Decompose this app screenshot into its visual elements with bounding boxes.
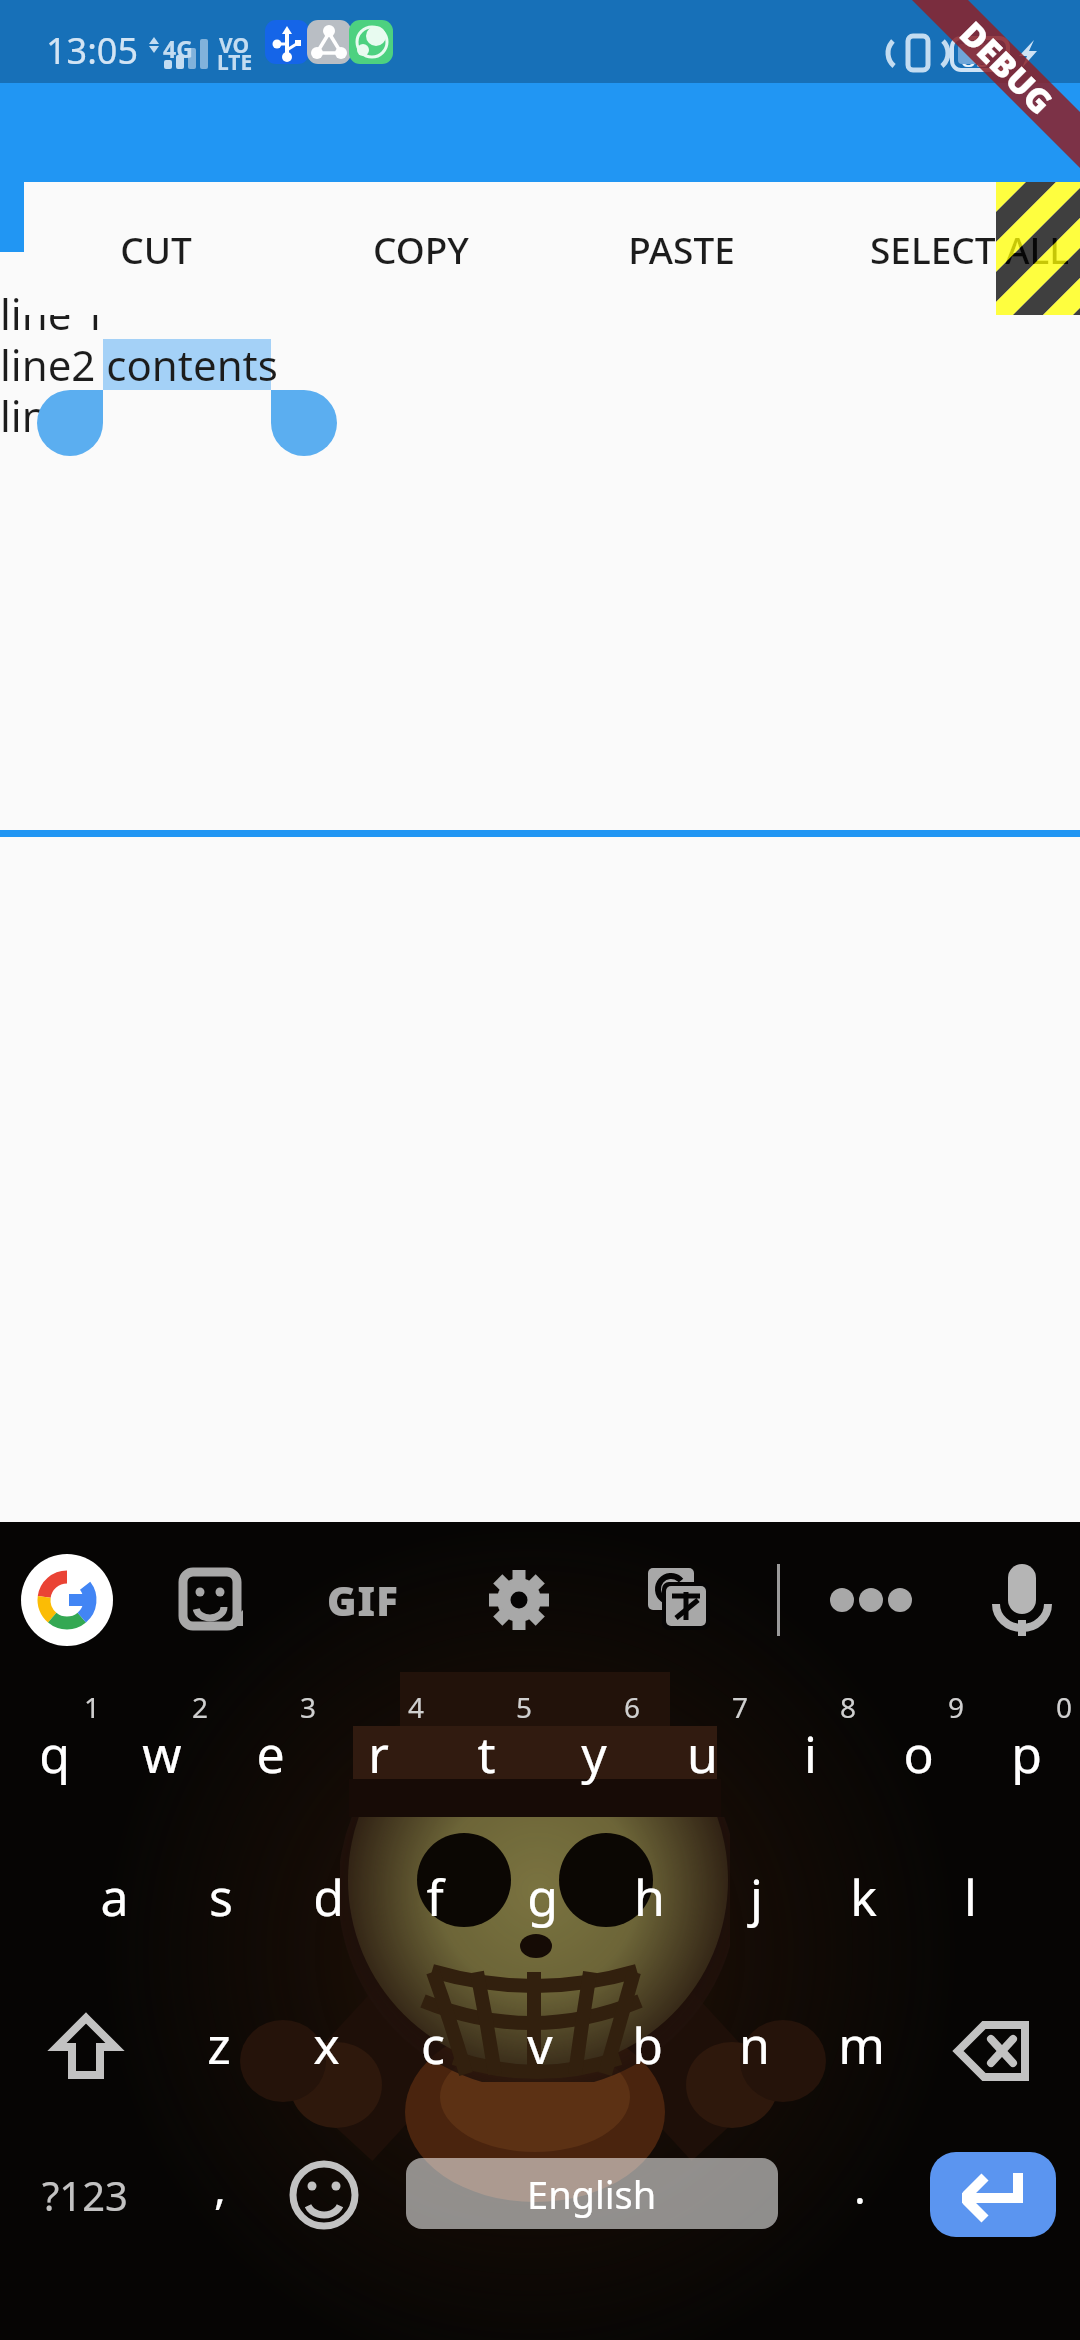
- staticText: d: [313, 1863, 344, 1931]
- staticText: h: [634, 1863, 665, 1931]
- staticText: 13:05: [46, 26, 139, 75]
- staticText: f: [426, 1863, 444, 1931]
- button[interactable]: PASTE: [566, 182, 796, 315]
- button[interactable]: Stickers: [160, 1550, 260, 1650]
- staticText: i: [804, 1720, 817, 1788]
- staticText: v: [527, 2011, 553, 2079]
- button[interactable]: SELECT ALL: [854, 182, 1080, 315]
- staticText: 7: [732, 1688, 749, 1726]
- staticText: b: [632, 2011, 663, 2079]
- button[interactable]: Settings: [469, 1550, 569, 1650]
- button[interactable]: z: [165, 1985, 273, 2105]
- button[interactable]: Google search: [17, 1550, 117, 1650]
- button[interactable]: w: [108, 1694, 216, 1814]
- staticText: 8: [840, 1688, 857, 1726]
- staticText: l: [964, 1863, 977, 1931]
- button[interactable]: .: [806, 2127, 914, 2247]
- button[interactable]: y: [540, 1694, 648, 1814]
- staticText: English: [527, 2168, 657, 2220]
- staticText: 4: [408, 1688, 425, 1726]
- button[interactable]: n: [700, 1985, 808, 2105]
- button[interactable]: i: [756, 1694, 864, 1814]
- button[interactable]: d: [274, 1837, 382, 1957]
- button[interactable]: u: [648, 1694, 756, 1814]
- staticText: 3: [300, 1688, 317, 1726]
- button[interactable]: English: [406, 2158, 778, 2229]
- staticText: DEBUG: [950, 11, 1063, 123]
- button[interactable]: r: [324, 1694, 432, 1814]
- button[interactable]: f: [381, 1837, 489, 1957]
- button[interactable]: More options: [821, 1550, 921, 1650]
- button[interactable]: Voice input: [972, 1550, 1072, 1650]
- staticText: m: [838, 2011, 885, 2079]
- button[interactable]: a: [60, 1837, 168, 1957]
- button[interactable]: m: [807, 1985, 915, 2105]
- staticText: q: [39, 1720, 70, 1788]
- staticText: 85: [961, 39, 991, 74]
- staticText: 0: [1056, 1688, 1073, 1726]
- staticText: GIF: [327, 1573, 399, 1627]
- staticText: r: [368, 1720, 389, 1788]
- staticText: line 1: [0, 285, 107, 342]
- staticText: 5: [516, 1688, 533, 1726]
- button[interactable]: COPY: [306, 182, 536, 315]
- staticText: o: [903, 1720, 934, 1788]
- button[interactable]: Enter: [930, 2152, 1056, 2237]
- staticText: g: [527, 1863, 558, 1931]
- staticText: COPY: [373, 224, 469, 274]
- button[interactable]: c: [379, 1985, 487, 2105]
- staticText: VO: [219, 31, 250, 60]
- button[interactable]: k: [809, 1837, 917, 1957]
- button[interactable]: g: [488, 1837, 596, 1957]
- staticText: line3: [0, 387, 96, 444]
- staticText: CUT: [120, 224, 192, 274]
- button[interactable]: h: [595, 1837, 703, 1957]
- staticText: s: [209, 1863, 233, 1931]
- staticText: w: [142, 1720, 182, 1788]
- staticText: 9: [948, 1688, 965, 1726]
- button[interactable]: l: [916, 1837, 1024, 1957]
- button[interactable]: q: [0, 1694, 108, 1814]
- button[interactable]: Translate: [627, 1550, 727, 1650]
- staticText: j: [750, 1863, 763, 1931]
- button[interactable]: CUT: [41, 182, 271, 315]
- button[interactable]: ?123: [31, 2135, 139, 2255]
- staticText: u: [687, 1720, 718, 1788]
- staticText: PASTE: [628, 224, 735, 274]
- staticText: e: [256, 1720, 285, 1788]
- staticText: SELECT ALL: [870, 224, 1069, 274]
- staticText: x: [313, 2011, 340, 2079]
- staticText: k: [850, 1863, 877, 1931]
- button[interactable]: Emoji: [270, 2150, 378, 2240]
- staticText: LTE: [217, 48, 253, 77]
- button[interactable]: e: [216, 1694, 324, 1814]
- staticText: n: [739, 2011, 770, 2079]
- staticText: z: [207, 2011, 231, 2079]
- staticText: y: [581, 1720, 607, 1788]
- staticText: c: [421, 2011, 445, 2079]
- staticText: 6: [624, 1688, 641, 1726]
- staticText: 4G: [163, 33, 193, 64]
- button[interactable]: x: [272, 1985, 380, 2105]
- staticText: ,: [214, 2157, 226, 2217]
- staticText: t: [477, 1720, 496, 1788]
- button[interactable]: p: [972, 1694, 1080, 1814]
- button[interactable]: v: [486, 1985, 594, 2105]
- staticText: ?123: [42, 2168, 128, 2222]
- button[interactable]: j: [702, 1837, 810, 1957]
- button[interactable]: t: [432, 1694, 540, 1814]
- staticText: 1: [84, 1688, 101, 1726]
- button[interactable]: s: [167, 1837, 275, 1957]
- staticText: a: [100, 1863, 129, 1931]
- button[interactable]: GIF: [310, 1570, 416, 1630]
- staticText: line2 contents: [0, 336, 278, 393]
- button[interactable]: b: [593, 1985, 701, 2105]
- button[interactable]: ,: [166, 2127, 274, 2247]
- staticText: 2: [192, 1688, 209, 1726]
- staticText: p: [1011, 1720, 1042, 1788]
- button[interactable]: Shift: [32, 1985, 140, 2105]
- staticText: .: [854, 2157, 866, 2217]
- button[interactable]: o: [864, 1694, 972, 1814]
- button[interactable]: Backspace: [927, 1985, 1057, 2105]
